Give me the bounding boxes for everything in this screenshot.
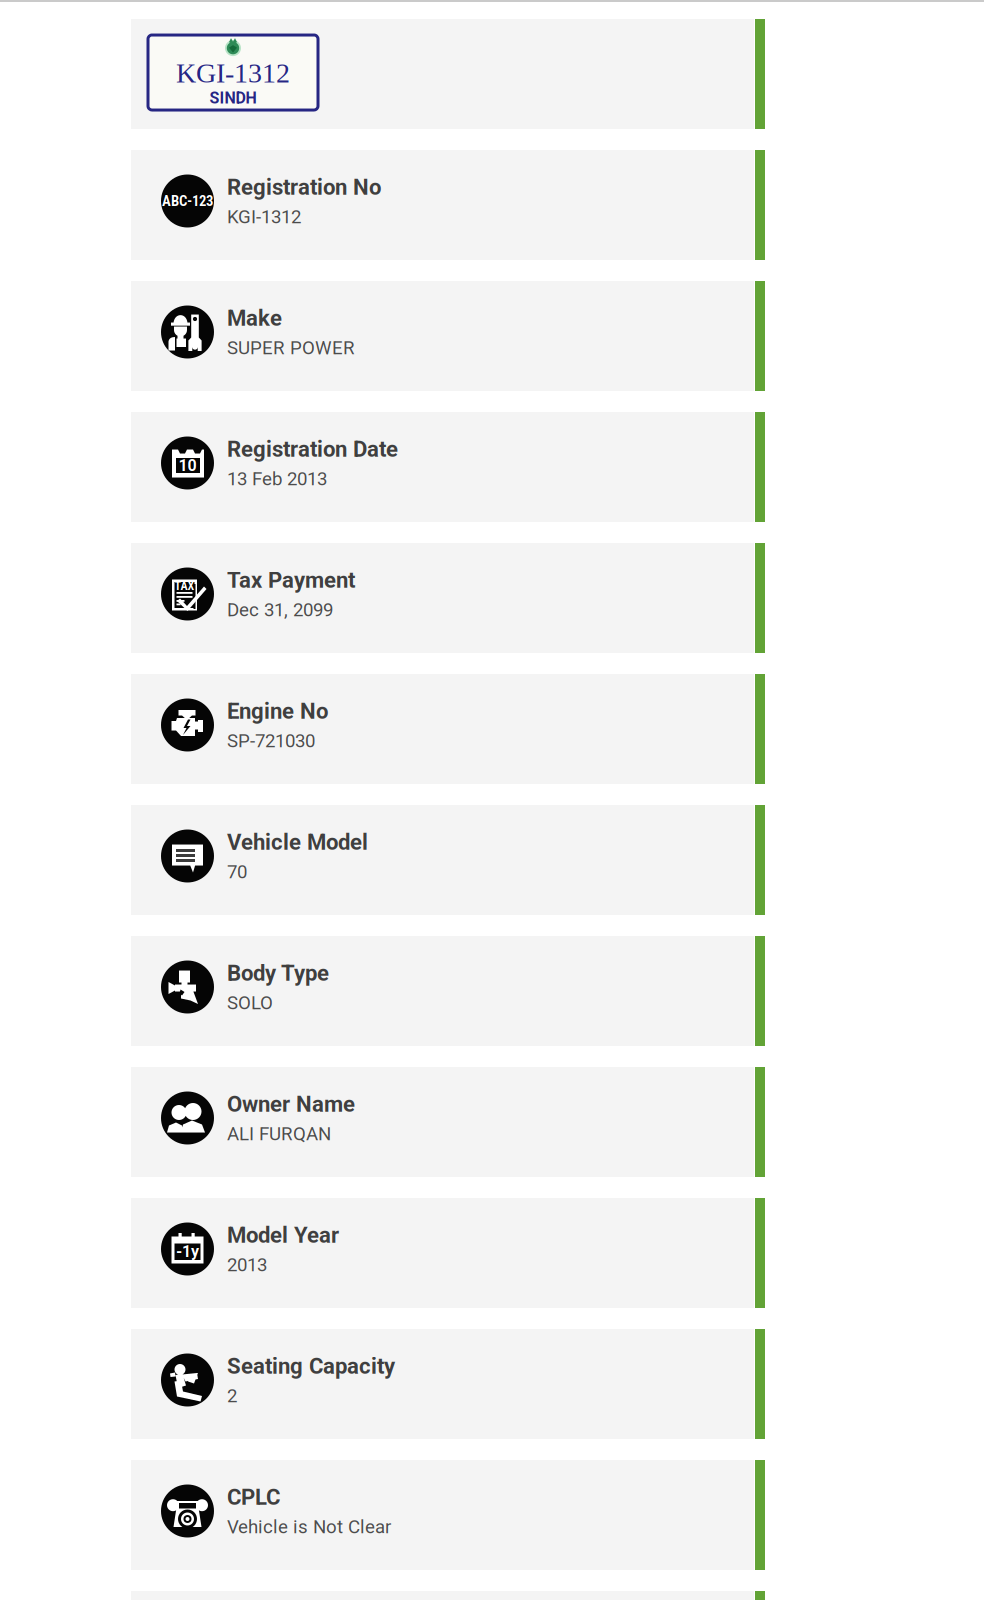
- staticText: 2: [227, 1385, 237, 1407]
- staticText: Make: [227, 305, 282, 331]
- button[interactable]: Vehicle Model: [0, 805, 984, 915]
- button[interactable]: Owner Name: [0, 1067, 984, 1177]
- staticText: Body Type: [227, 960, 329, 986]
- staticText: 13 Feb 2013: [227, 468, 327, 490]
- staticText: Registration Date: [227, 436, 398, 462]
- staticText: SINDH: [209, 89, 256, 107]
- staticText: TAX: [174, 579, 194, 593]
- staticText: 10: [178, 456, 196, 475]
- staticText: 2013: [227, 1254, 267, 1276]
- button[interactable]: Seating Capacity: [0, 1329, 984, 1439]
- staticText: 70: [227, 861, 247, 883]
- staticText: Registration No: [227, 174, 381, 200]
- button[interactable]: Engine No: [0, 674, 984, 784]
- button[interactable]: Make: [0, 281, 984, 391]
- button[interactable]: ABC-123: [0, 1591, 984, 1600]
- staticText: Dec 31, 2099: [227, 599, 333, 621]
- staticText: SP-721030: [227, 730, 315, 752]
- staticText: KGI-1312: [227, 206, 301, 228]
- staticText: Vehicle Model: [227, 829, 368, 855]
- staticText: Model Year: [227, 1222, 339, 1248]
- staticText: Seating Capacity: [227, 1353, 395, 1379]
- staticText: KGI-1312: [176, 58, 290, 89]
- staticText: ABC-123: [162, 192, 213, 210]
- button[interactable]: ABC-123: [0, 150, 984, 260]
- button[interactable]: Body Type: [0, 936, 984, 1046]
- button[interactable]: CPLC: [0, 1460, 984, 1570]
- staticText: ALI FURQAN: [227, 1123, 331, 1145]
- button[interactable]: TAX: [0, 543, 984, 653]
- staticText: Engine No: [227, 698, 328, 724]
- staticText: CPLC: [227, 1484, 280, 1510]
- button[interactable]: -1y: [0, 1198, 984, 1308]
- staticText: Owner Name: [227, 1091, 355, 1117]
- staticText: Tax Payment: [227, 567, 355, 593]
- staticText: -1y: [176, 1242, 199, 1261]
- button[interactable]: 10: [0, 412, 984, 522]
- staticText: SUPER POWER: [227, 337, 355, 359]
- staticText: Vehicle is Not Clear: [227, 1516, 391, 1538]
- staticText: SOLO: [227, 992, 273, 1014]
